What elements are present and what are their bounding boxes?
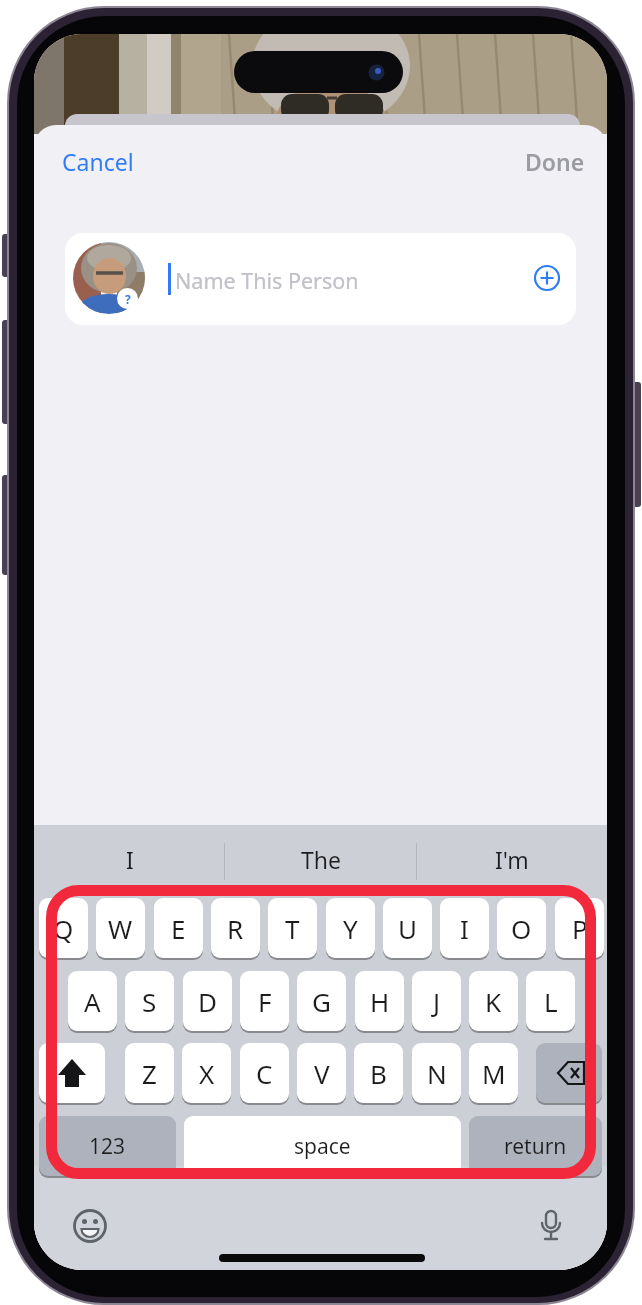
- button[interactable]: K: [469, 971, 518, 1031]
- button[interactable]: G: [297, 971, 346, 1031]
- staticText: Z: [142, 1056, 157, 1091]
- staticText: Cancel: [62, 146, 134, 177]
- staticText: X: [199, 1056, 215, 1091]
- staticText: M: [482, 1056, 506, 1091]
- button[interactable]: P: [555, 898, 604, 958]
- button[interactable]: [536, 1043, 602, 1103]
- staticText: V: [314, 1056, 330, 1091]
- staticText: J: [433, 984, 441, 1019]
- staticText: The: [301, 844, 341, 875]
- staticText: U: [398, 911, 418, 946]
- staticText: F: [258, 984, 272, 1019]
- button[interactable]: The: [225, 834, 417, 885]
- staticText: B: [370, 1056, 387, 1091]
- button[interactable]: N: [412, 1043, 461, 1103]
- button[interactable]: 123: [39, 1116, 176, 1176]
- button[interactable]: [73, 1209, 107, 1243]
- button[interactable]: D: [183, 971, 232, 1031]
- button[interactable]: B: [354, 1043, 403, 1103]
- staticText: P: [572, 911, 588, 946]
- staticText: G: [312, 984, 331, 1019]
- staticText: return: [504, 1132, 567, 1161]
- button[interactable]: [534, 265, 560, 291]
- staticText: L: [544, 984, 558, 1019]
- staticText: O: [511, 911, 532, 946]
- staticText: S: [142, 984, 157, 1019]
- staticText: ?: [125, 291, 131, 307]
- button[interactable]: I: [440, 898, 489, 958]
- staticText: K: [485, 984, 502, 1019]
- button[interactable]: V: [297, 1043, 346, 1103]
- staticText: R: [227, 911, 244, 946]
- button[interactable]: Y: [326, 898, 375, 958]
- button[interactable]: E: [154, 898, 203, 958]
- button[interactable]: F: [240, 971, 289, 1031]
- staticText: I'm: [495, 844, 529, 875]
- button[interactable]: [536, 1209, 566, 1243]
- button[interactable]: R: [211, 898, 260, 958]
- button[interactable]: L: [526, 971, 575, 1031]
- staticText: C: [256, 1056, 273, 1091]
- staticText: Y: [343, 911, 358, 946]
- staticText: space: [294, 1132, 351, 1161]
- button[interactable]: return: [469, 1116, 602, 1176]
- button[interactable]: A: [68, 971, 117, 1031]
- button[interactable]: [65, 233, 576, 325]
- button[interactable]: X: [182, 1043, 231, 1103]
- button[interactable]: H: [355, 971, 404, 1031]
- button[interactable]: [39, 1043, 105, 1103]
- button[interactable]: S: [125, 971, 174, 1031]
- button[interactable]: I: [34, 834, 225, 885]
- button[interactable]: O: [497, 898, 546, 958]
- staticText: Q: [53, 911, 74, 946]
- button[interactable]: J: [412, 971, 461, 1031]
- staticText: A: [84, 984, 101, 1019]
- button[interactable]: space: [184, 1116, 461, 1176]
- staticText: Name This Person: [175, 266, 359, 295]
- staticText: I: [460, 911, 469, 946]
- button[interactable]: T: [268, 898, 317, 958]
- staticText: W: [108, 911, 133, 946]
- staticText: N: [427, 1056, 447, 1091]
- button[interactable]: W: [96, 898, 145, 958]
- staticText: 123: [89, 1132, 126, 1161]
- button[interactable]: Cancel: [62, 146, 134, 177]
- staticText: E: [171, 911, 186, 946]
- staticText: H: [370, 984, 390, 1019]
- button[interactable]: Q: [39, 898, 88, 958]
- staticText: T: [285, 911, 300, 946]
- button[interactable]: I'm: [417, 834, 607, 885]
- button[interactable]: Z: [125, 1043, 174, 1103]
- button[interactable]: Done: [525, 146, 585, 177]
- staticText: Done: [525, 146, 585, 177]
- button[interactable]: C: [240, 1043, 289, 1103]
- staticText: I: [126, 844, 134, 875]
- button[interactable]: U: [383, 898, 432, 958]
- staticText: D: [198, 984, 217, 1019]
- button[interactable]: M: [469, 1043, 518, 1103]
